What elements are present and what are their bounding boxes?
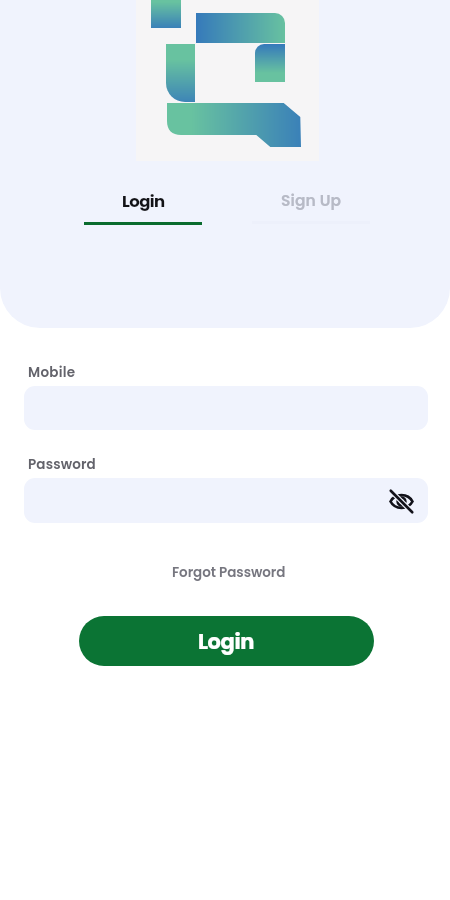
button[interactable]: Show password <box>24 478 428 523</box>
staticText: Password <box>28 455 96 474</box>
button[interactable]: Sign Up <box>252 190 370 224</box>
button[interactable]: Login <box>84 190 202 225</box>
staticText: Login <box>122 190 165 213</box>
button[interactable]: Login <box>79 616 374 666</box>
staticText: Login <box>198 627 255 656</box>
staticText: Mobile <box>28 363 76 382</box>
staticText: Sign Up <box>281 190 342 212</box>
staticText: Forgot Password <box>172 563 286 582</box>
button[interactable]: Show password <box>386 486 416 516</box>
button[interactable]: Forgot Password <box>166 561 292 584</box>
